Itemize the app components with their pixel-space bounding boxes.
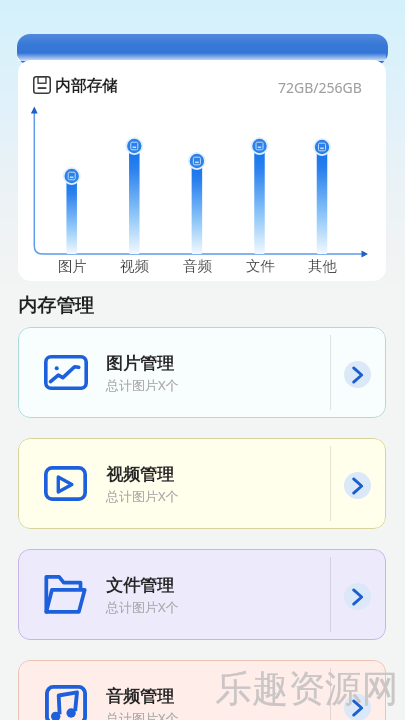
staticText: 总计图片X个 xyxy=(106,376,179,394)
staticText: 总计图片X个 xyxy=(106,709,179,720)
staticText: 内部存储 xyxy=(55,76,118,96)
staticText: 图片 xyxy=(58,257,87,275)
staticText: 音频管理 xyxy=(106,686,174,707)
staticText: 视频管理 xyxy=(106,464,174,485)
staticText: 总计图片X个 xyxy=(106,598,179,616)
staticText: 文件管理 xyxy=(106,575,174,596)
staticText: 图片管理 xyxy=(106,353,174,374)
button[interactable]: 视频管理 xyxy=(18,438,386,529)
staticText: 72GB/256GB xyxy=(278,78,362,97)
staticText: 总计图片X个 xyxy=(106,487,179,505)
staticText: 乐趣资源网 xyxy=(215,666,399,712)
staticText: 文件 xyxy=(246,257,275,275)
staticText: 其他 xyxy=(308,257,337,275)
button[interactable]: 图片管理 xyxy=(18,327,386,418)
staticText: 音频 xyxy=(183,257,212,275)
button[interactable]: 文件管理 xyxy=(18,549,386,640)
button[interactable]: 音频管理 xyxy=(18,660,386,720)
staticText: 视频 xyxy=(120,257,149,275)
staticText: 内存管理 xyxy=(18,294,94,318)
